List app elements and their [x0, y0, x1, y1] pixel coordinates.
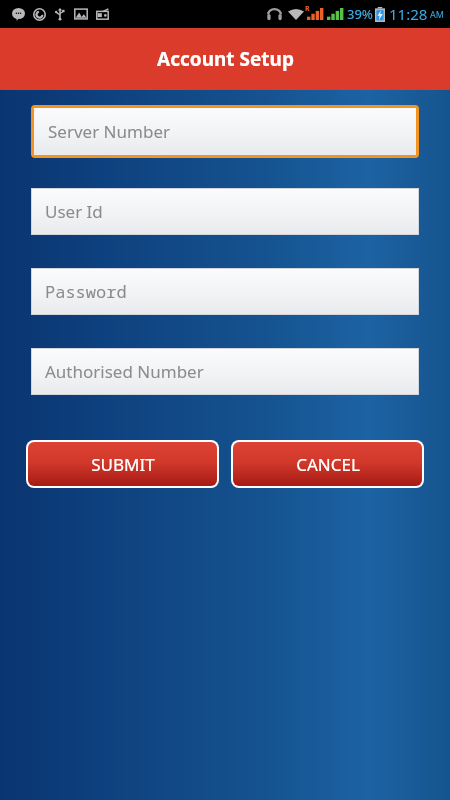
staticText: Account Setup [157, 46, 294, 72]
staticText: R [305, 4, 310, 14]
staticText: 39% [347, 5, 373, 23]
staticText: Server Number [48, 120, 170, 143]
button[interactable]: Password [31, 268, 419, 315]
button[interactable]: Authorised Number [31, 348, 419, 395]
staticText: SUBMIT [91, 453, 155, 476]
button[interactable]: CANCEL [233, 442, 422, 486]
staticText: Authorised Number [45, 360, 204, 383]
button[interactable]: User Id [31, 188, 419, 235]
staticText: Password [45, 280, 127, 303]
staticText: AM [430, 8, 444, 20]
staticText: CANCEL [296, 453, 360, 476]
button[interactable]: SUBMIT [28, 442, 217, 486]
staticText: User Id [45, 200, 103, 223]
button[interactable]: Server Number [34, 108, 416, 155]
staticText: 11:28 [389, 4, 428, 24]
